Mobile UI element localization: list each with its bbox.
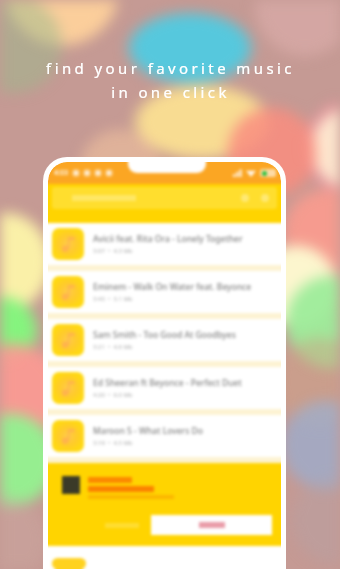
staticText: 3:45 • 5.1 Mb [93, 295, 133, 303]
staticText: 4:20 • 6.0 Mb [93, 391, 133, 399]
staticText: 3:07 • 4.3 Mb [93, 247, 133, 255]
button[interactable]: Avicii feat. Rita Ora - Lonely Together [48, 223, 281, 265]
staticText: Sam Smith - Too Good At Goodbyes [93, 329, 236, 341]
button[interactable]: Ed Sheeran ft Beyonce - Perfect Duet [48, 367, 281, 409]
staticText: find your favorite music [46, 58, 295, 78]
staticText: Maroon 5 - What Lovers Do [93, 425, 203, 437]
button[interactable]: Maroon 5 - What Lovers Do [48, 415, 281, 457]
staticText: 4:03 [54, 168, 68, 178]
button[interactable]: Sam Smith - Too Good At Goodbyes [48, 319, 281, 361]
staticText: Eminem - Walk On Water feat. Beyonce [93, 281, 252, 293]
staticText: 3:19 • 4.5 Mb [93, 439, 133, 447]
staticText: 3:21 • 4.6 Mb [93, 343, 133, 351]
button[interactable] [48, 463, 281, 546]
button[interactable]: Eminem - Walk On Water feat. Beyonce [48, 271, 281, 313]
staticText: Avicii feat. Rita Ora - Lonely Together [93, 233, 243, 245]
button[interactable] [52, 187, 277, 209]
staticText: in one click [111, 82, 230, 102]
button[interactable] [48, 558, 281, 569]
staticText: Ed Sheeran ft Beyonce - Perfect Duet [93, 377, 242, 389]
button[interactable] [151, 515, 272, 535]
